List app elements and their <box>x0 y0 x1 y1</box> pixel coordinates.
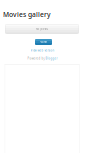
button[interactable]: Powered by <box>0 56 85 61</box>
staticText: No posts. <box>35 27 48 31</box>
button[interactable]: View web version <box>0 48 85 53</box>
staticText: Powered by <box>27 57 44 60</box>
staticText: Blogger <box>45 57 57 60</box>
staticText: View web version <box>30 49 54 52</box>
staticText: Home <box>39 40 47 44</box>
button[interactable]: Home <box>35 39 52 45</box>
staticText: Movies gallery <box>3 10 51 19</box>
